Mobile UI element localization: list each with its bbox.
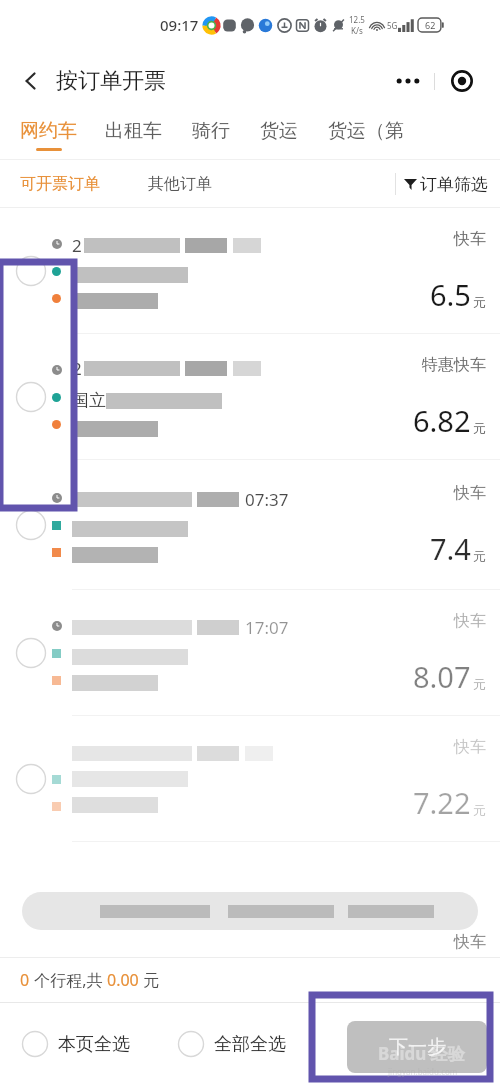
button[interactable]: 07:37 — [0, 460, 500, 590]
button[interactable]: 本页全选 — [22, 1031, 130, 1057]
staticText: 下一步 — [389, 1035, 446, 1059]
staticText: 07:37 — [245, 488, 289, 511]
staticText: 7.22 — [413, 783, 471, 822]
staticText: 货运（第 — [328, 119, 404, 143]
staticText: 12.5 — [349, 14, 365, 25]
staticText: 元 — [473, 420, 486, 436]
staticText: 元 — [473, 294, 486, 310]
staticText: 09:17 — [160, 15, 199, 35]
staticText: 8.07 — [413, 657, 471, 696]
staticText: 本页全选 — [58, 1033, 130, 1056]
button[interactable]: 快车 — [0, 716, 500, 842]
button[interactable]: 可开票订单 — [20, 174, 100, 194]
staticText: 2 — [72, 357, 82, 380]
staticText: K/s — [351, 25, 363, 36]
staticText: 元 — [473, 802, 486, 818]
button[interactable]: 订单筛选 — [395, 173, 488, 195]
staticText: 快车 — [454, 737, 486, 757]
button[interactable]: 17:07 — [0, 590, 500, 716]
button[interactable]: 货运（第 — [328, 112, 404, 148]
button[interactable]: Target — [435, 64, 488, 98]
button[interactable]: 其他订单 — [148, 174, 212, 194]
staticText: 个行程,共 — [30, 969, 107, 991]
staticText: 按订单开票 — [56, 67, 166, 95]
button[interactable]: 出租车 — [105, 112, 162, 148]
button[interactable]: 2 — [0, 334, 500, 460]
staticText: 5G — [387, 20, 398, 31]
button[interactable]: 全部全选 — [178, 1031, 286, 1057]
staticText: 元 — [473, 548, 486, 564]
button[interactable]: 货运 — [260, 112, 298, 148]
staticText: 7.4 — [430, 529, 471, 568]
button[interactable]: 2 — [0, 208, 500, 334]
staticText: 全部全选 — [214, 1033, 286, 1056]
staticText: 62 — [425, 19, 436, 31]
button[interactable]: 下一步 — [347, 1021, 487, 1073]
staticText: 出租车 — [105, 119, 162, 143]
staticText: 骑行 — [192, 119, 230, 143]
staticText: 6.5 — [430, 275, 471, 314]
button[interactable]: 骑行 — [192, 112, 230, 148]
staticText: 元 — [139, 969, 160, 991]
button[interactable]: 网约车 — [20, 112, 77, 151]
staticText: 货运 — [260, 119, 298, 143]
staticText: 快车 — [454, 229, 486, 249]
staticText: 快车 — [454, 932, 486, 952]
staticText: 元 — [473, 676, 486, 692]
staticText: 特惠快车 — [422, 355, 486, 375]
staticText: 订单筛选 — [420, 174, 488, 195]
staticText: 17:07 — [245, 616, 289, 639]
staticText: jingyan.baidu.com — [388, 1066, 458, 1077]
staticText: 2 — [72, 234, 82, 257]
staticText: 快车 — [454, 611, 486, 631]
staticText: 网约车 — [20, 119, 77, 143]
staticText: 0 — [20, 969, 30, 991]
staticText: Baidu 经验 — [378, 1042, 465, 1065]
staticText: 快车 — [454, 483, 486, 503]
button[interactable]: More options — [381, 64, 434, 98]
staticText: 6.82 — [413, 401, 471, 440]
button[interactable]: Back — [10, 60, 52, 102]
staticText: 0.00 — [107, 969, 139, 991]
staticText: 国立 — [72, 390, 106, 411]
